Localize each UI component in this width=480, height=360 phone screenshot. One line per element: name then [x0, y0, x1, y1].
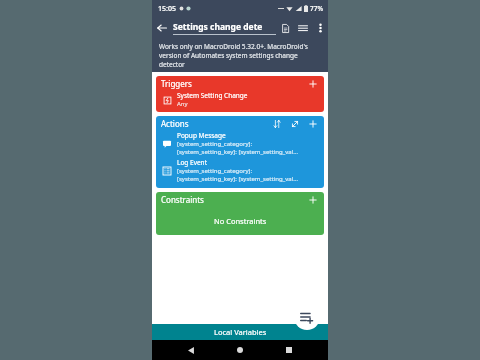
button[interactable]: Actions	[156, 116, 324, 188]
button[interactable]: More options	[312, 20, 328, 36]
button[interactable]: Back	[152, 18, 172, 38]
staticText: Any	[177, 100, 188, 108]
button[interactable]: Add trigger	[307, 78, 319, 90]
button[interactable]: Recent apps	[279, 340, 299, 360]
staticText: No Constraints	[214, 216, 267, 226]
button[interactable]: Local Variables	[152, 324, 328, 340]
button[interactable]: Add action	[307, 118, 319, 130]
button[interactable]: Back	[181, 340, 201, 360]
staticText: 15:05	[158, 4, 176, 14]
staticText: Triggers	[161, 78, 307, 89]
button[interactable]: Home	[230, 340, 250, 360]
button[interactable]: Add constraint	[307, 194, 319, 206]
staticText: [system_setting_key]: [system_setting_va…	[177, 148, 298, 156]
button[interactable]: Add action	[294, 304, 320, 330]
button[interactable]: Expand actions	[289, 118, 301, 130]
button[interactable]: Constraints	[156, 192, 324, 235]
button[interactable]: Sort actions	[271, 118, 283, 130]
staticText: Constraints	[161, 194, 307, 205]
staticText: Actions	[161, 118, 271, 129]
button[interactable]: Popup Message	[161, 131, 319, 156]
staticText: Popup Message	[177, 131, 226, 140]
button[interactable]: Log Event	[161, 158, 319, 183]
staticText: [system_setting_key]: [system_setting_va…	[177, 175, 298, 183]
button[interactable]: Notes	[276, 19, 294, 37]
button[interactable]: System Setting Change	[161, 91, 319, 108]
staticText: System Setting Change	[177, 91, 248, 100]
staticText: [system_setting_category]:	[177, 140, 253, 148]
staticText: Local Variables	[214, 327, 267, 337]
staticText: Settings change dete	[173, 21, 263, 33]
staticText: 77%	[310, 4, 323, 13]
button[interactable]: Triggers	[156, 76, 324, 112]
staticText: Log Event	[177, 158, 207, 167]
button[interactable]: Menu list	[294, 19, 312, 37]
staticText: Works only on MacroDroid 5.32.0+. MacroD…	[159, 42, 321, 69]
staticText: [system_setting_category]:	[177, 167, 253, 175]
